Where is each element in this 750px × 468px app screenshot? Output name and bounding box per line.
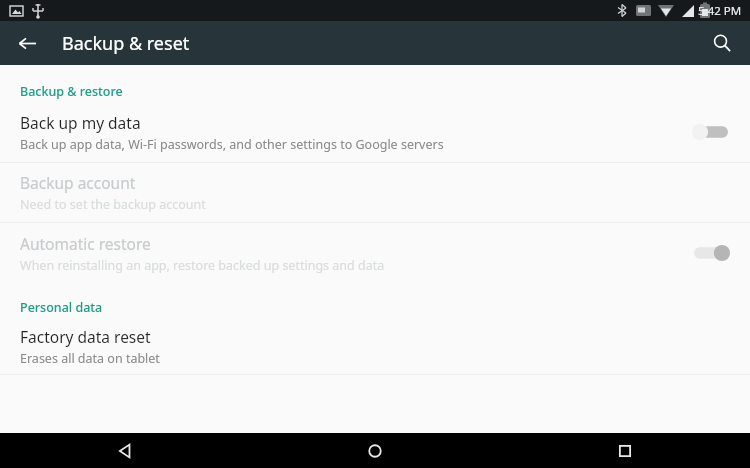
button[interactable]: Search xyxy=(704,25,740,61)
staticText: When reinstalling an app, restore backed… xyxy=(20,257,385,274)
staticText: Factory data reset xyxy=(20,326,151,347)
staticText: Backup account xyxy=(20,172,136,193)
staticText: Back up app data, Wi-Fi passwords, and o… xyxy=(20,136,444,153)
button[interactable]: Backup account xyxy=(0,163,750,222)
staticText: Erases all data on tablet xyxy=(20,350,160,367)
staticText: Need to set the backup account xyxy=(20,196,206,213)
staticText: Backup & reset xyxy=(62,31,190,56)
button[interactable]: Back xyxy=(0,433,250,468)
button[interactable]: Factory data reset xyxy=(0,318,750,374)
staticText: 5:42 PM xyxy=(698,3,742,19)
staticText: Backup & restore xyxy=(20,83,123,100)
button[interactable]: Toggle xyxy=(688,238,734,268)
button[interactable]: Back xyxy=(10,26,44,60)
button[interactable]: Back up my data xyxy=(0,102,750,162)
button[interactable]: Toggle xyxy=(688,117,734,147)
button[interactable]: Automatic restore xyxy=(0,223,750,283)
staticText: Back up my data xyxy=(20,112,141,133)
staticText: Personal data xyxy=(20,299,103,316)
staticText: Automatic restore xyxy=(20,233,151,254)
button[interactable]: Recent apps xyxy=(500,433,750,468)
button[interactable]: Home xyxy=(250,433,500,468)
